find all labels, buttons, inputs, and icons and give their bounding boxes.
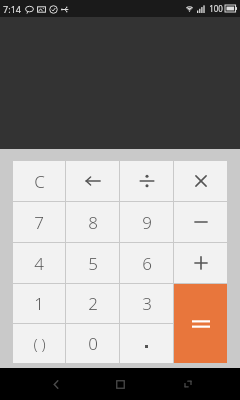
button[interactable] xyxy=(120,324,173,363)
button[interactable]: Home xyxy=(108,372,132,396)
staticText: 7:14 xyxy=(3,3,21,15)
button[interactable]: Plus xyxy=(174,243,227,283)
staticText: 3 xyxy=(142,292,152,315)
button[interactable]: Equals xyxy=(174,284,227,363)
button[interactable]: 9 xyxy=(120,202,173,242)
button[interactable]: Divide xyxy=(120,161,173,201)
button[interactable]: Multiply xyxy=(174,161,227,201)
button[interactable]: C xyxy=(13,161,65,201)
button[interactable]: Recent apps xyxy=(176,372,200,396)
button[interactable]: Minus xyxy=(174,202,227,242)
staticText: 7 xyxy=(34,211,44,234)
button[interactable]: 6 xyxy=(120,243,173,283)
button[interactable]: 7 xyxy=(13,202,65,242)
staticText: 8 xyxy=(88,211,98,234)
button[interactable]: Backspace xyxy=(66,161,119,201)
staticText: 5 xyxy=(88,252,98,275)
staticText: 2 xyxy=(88,292,98,315)
button[interactable]: ( ) xyxy=(13,324,65,363)
button[interactable]: 1 xyxy=(13,284,65,323)
button[interactable]: 8 xyxy=(66,202,119,242)
button[interactable]: 2 xyxy=(66,284,119,323)
button[interactable]: 3 xyxy=(120,284,173,323)
staticText: 9 xyxy=(142,211,152,234)
staticText: ( ) xyxy=(33,334,46,354)
button[interactable]: 5 xyxy=(66,243,119,283)
staticText: 100 xyxy=(209,3,223,14)
button[interactable]: Back xyxy=(44,372,68,396)
staticText: C xyxy=(34,170,45,193)
staticText: 1 xyxy=(34,292,44,315)
staticText: 4 xyxy=(34,252,44,275)
staticText: 0 xyxy=(88,332,98,355)
button[interactable]: 4 xyxy=(13,243,65,283)
button[interactable]: 0 xyxy=(66,324,119,363)
staticText: 6 xyxy=(142,252,152,275)
